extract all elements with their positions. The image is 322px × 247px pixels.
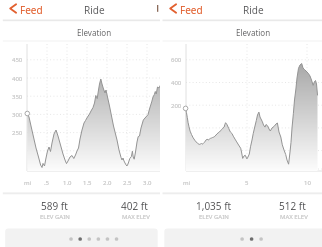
button[interactable]: 512 ft bbox=[256, 196, 322, 226]
staticText: Ride bbox=[243, 3, 264, 17]
staticText: 2.0 bbox=[103, 179, 112, 187]
button[interactable]: Back to Feed bbox=[164, 0, 206, 19]
button[interactable]: 1,035 ft bbox=[177, 196, 249, 226]
staticText: Elevation bbox=[236, 27, 271, 38]
button[interactable]: 589 ft bbox=[18, 196, 90, 226]
staticText: 402 ft bbox=[121, 199, 148, 213]
staticText: 400 bbox=[171, 79, 182, 87]
staticText: MAX ELEV bbox=[122, 213, 150, 221]
staticText: 512 ft bbox=[279, 199, 306, 213]
staticText: Feed bbox=[20, 3, 43, 17]
staticText: 2.5 bbox=[123, 179, 132, 187]
staticText: 589 ft bbox=[41, 199, 68, 213]
staticText: 3.0 bbox=[143, 179, 152, 187]
staticText: 400 bbox=[12, 75, 23, 83]
staticText: 10 bbox=[304, 179, 311, 187]
staticText: MAX ELEV bbox=[280, 213, 308, 221]
staticText: Elevation bbox=[77, 27, 112, 38]
staticText: Feed bbox=[180, 3, 203, 17]
staticText: mi bbox=[24, 179, 32, 187]
staticText: Ride bbox=[84, 3, 105, 17]
staticText: 350 bbox=[12, 93, 23, 101]
staticText: 200 bbox=[171, 102, 182, 110]
staticText: ELEV GAIN bbox=[40, 213, 70, 221]
staticText: 1.5 bbox=[83, 179, 92, 187]
staticText: 1,035 ft bbox=[196, 199, 232, 213]
staticText: 250 bbox=[12, 129, 23, 137]
staticText: 600 bbox=[171, 56, 182, 64]
staticText: 300 bbox=[12, 111, 23, 119]
staticText: ELEV GAIN bbox=[199, 213, 229, 221]
button[interactable]: Back to Feed bbox=[4, 0, 46, 19]
staticText: .5 bbox=[44, 179, 50, 187]
staticText: 5 bbox=[245, 179, 249, 187]
staticText: mi bbox=[183, 179, 191, 187]
staticText: 450 bbox=[12, 56, 23, 64]
button[interactable]: 402 ft bbox=[98, 196, 160, 226]
staticText: 1.0 bbox=[63, 179, 72, 187]
